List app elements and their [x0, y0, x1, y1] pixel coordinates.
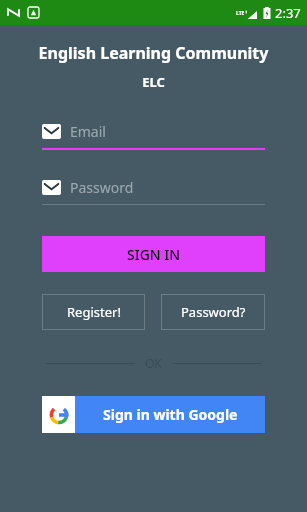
staticText: Password	[70, 178, 134, 197]
button[interactable]: Register!	[42, 294, 145, 330]
staticText: Email	[70, 122, 106, 141]
staticText: ELC	[0, 73, 307, 91]
staticText: Sign in with Google	[103, 405, 238, 424]
staticText: SIGN IN	[127, 245, 181, 264]
button[interactable]: SIGN IN	[42, 236, 265, 272]
staticText: English Learning Community	[0, 42, 307, 64]
button[interactable]: Password?	[161, 294, 265, 330]
staticText: OK	[145, 355, 162, 371]
staticText: LTE	[236, 10, 245, 17]
button[interactable]: Sign in with Google	[42, 396, 265, 433]
staticText: Password?	[181, 303, 246, 321]
staticText: Register!	[67, 303, 121, 321]
staticText: 2:37	[275, 4, 301, 22]
